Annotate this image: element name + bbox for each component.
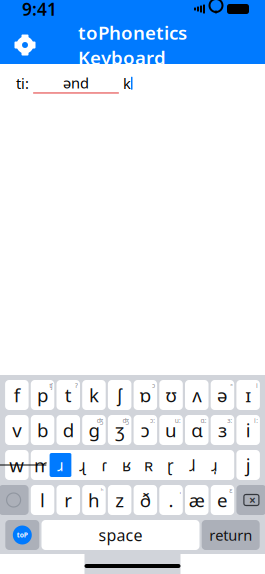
staticText: ənd	[63, 73, 89, 92]
staticText: ɪ	[245, 383, 251, 407]
button[interactable]	[159, 450, 183, 480]
button[interactable]: f	[5, 380, 29, 410]
staticText: e	[217, 488, 228, 512]
staticText: ɒ	[140, 383, 151, 407]
staticText: ʒ	[115, 418, 124, 442]
button[interactable]: Delete	[236, 485, 265, 515]
staticText: ɑ	[191, 418, 202, 442]
button[interactable]: ɪ	[236, 380, 260, 410]
button[interactable]: r	[56, 485, 80, 515]
button[interactable]: p	[31, 380, 54, 410]
button[interactable]: Switch keyboard	[5, 520, 39, 550]
staticText: space	[98, 524, 142, 546]
button[interactable]: j	[236, 450, 260, 480]
button[interactable]: ɾ	[94, 453, 116, 477]
button[interactable]: z	[108, 485, 131, 515]
staticText: ɻ	[79, 454, 86, 476]
button[interactable]: ʃ	[108, 380, 131, 410]
staticText: ʃ	[117, 383, 122, 407]
staticText: .	[168, 488, 173, 512]
button[interactable]: ʊ	[159, 380, 183, 410]
staticText: ʀ	[144, 454, 153, 476]
button[interactable]: g	[82, 415, 106, 445]
button[interactable]: Settings	[8, 28, 42, 62]
button[interactable]: d	[56, 415, 80, 445]
button[interactable]: space	[41, 520, 199, 550]
button[interactable]: e	[211, 485, 234, 515]
staticText: toPhonetics Keyboard	[78, 20, 187, 70]
staticText: ɾ	[102, 454, 108, 476]
staticText: ᵊ	[230, 381, 232, 390]
button[interactable]: ɜ	[211, 415, 234, 445]
staticText: iː	[254, 416, 258, 425]
staticText: ɺ	[189, 454, 196, 476]
button[interactable]: ʁ	[116, 453, 138, 477]
button[interactable]: ɺ	[182, 453, 204, 477]
button[interactable]	[108, 450, 131, 480]
staticText: ɑː	[200, 416, 206, 425]
staticText: toP	[17, 531, 28, 539]
staticText: v	[12, 418, 21, 442]
button[interactable]: ð	[134, 485, 157, 515]
staticText: i	[246, 418, 251, 442]
staticText: ɹ	[57, 454, 64, 476]
button[interactable]: Shift	[0, 485, 29, 515]
button[interactable]: ə	[211, 380, 234, 410]
button[interactable]: ɻ	[72, 453, 94, 477]
staticText: l	[40, 488, 45, 512]
button[interactable]	[211, 450, 234, 480]
staticText: t	[65, 383, 72, 407]
button[interactable]	[82, 450, 106, 480]
button[interactable]: m	[31, 450, 54, 480]
button[interactable]: ɒ	[134, 380, 157, 410]
button[interactable]: v	[5, 415, 29, 445]
staticText: ɔ	[141, 418, 150, 442]
staticText: ʰ	[101, 486, 104, 495]
staticText: d	[63, 418, 74, 442]
button[interactable]: æ	[185, 485, 208, 515]
button[interactable]: i	[236, 415, 260, 445]
button[interactable]	[185, 450, 208, 480]
button[interactable]: ʀ	[138, 453, 160, 477]
button[interactable]: ɽ	[160, 453, 182, 477]
button[interactable]: ʌ	[185, 380, 208, 410]
button[interactable]	[56, 450, 80, 480]
staticText: ɜː	[227, 416, 232, 425]
button[interactable]: l	[31, 485, 54, 515]
button[interactable]	[134, 450, 157, 480]
staticText: 9:41	[22, 0, 57, 20]
button[interactable]: ʒ	[108, 415, 131, 445]
staticText: u	[165, 418, 177, 442]
staticText: k	[119, 73, 131, 93]
button[interactable]: u	[159, 415, 183, 445]
button[interactable]: t	[56, 380, 80, 410]
staticText: ɜ	[218, 418, 227, 442]
staticText: r	[64, 488, 72, 512]
staticText: ti:	[16, 73, 33, 93]
staticText: ˌ	[180, 486, 181, 495]
staticText: ɔ	[152, 381, 155, 390]
button[interactable]: h	[82, 485, 106, 515]
button[interactable]: ɹ̩	[204, 453, 226, 477]
staticText: j	[246, 453, 251, 477]
staticText: ʌ	[192, 383, 201, 407]
button[interactable]: k	[82, 380, 106, 410]
staticText: æ	[189, 488, 205, 512]
staticText: ɹ̩	[211, 454, 218, 476]
staticText: uː	[175, 416, 181, 425]
button[interactable]: ɔ	[134, 415, 157, 445]
staticText: ʤ	[122, 416, 129, 425]
button[interactable]: ɹ	[50, 453, 72, 477]
staticText: ɛ	[229, 486, 232, 495]
staticText: m	[34, 453, 51, 477]
button[interactable]: ɑ	[185, 415, 208, 445]
staticText: g	[88, 418, 99, 442]
staticText: ɔː	[150, 416, 155, 425]
button[interactable]: .	[159, 485, 183, 515]
staticText: h	[88, 488, 100, 512]
button[interactable]: b	[31, 415, 54, 445]
button[interactable]: Return	[202, 520, 260, 550]
staticText: ʧ	[49, 381, 52, 390]
button[interactable]: w	[5, 450, 29, 480]
staticText: p	[37, 383, 48, 407]
